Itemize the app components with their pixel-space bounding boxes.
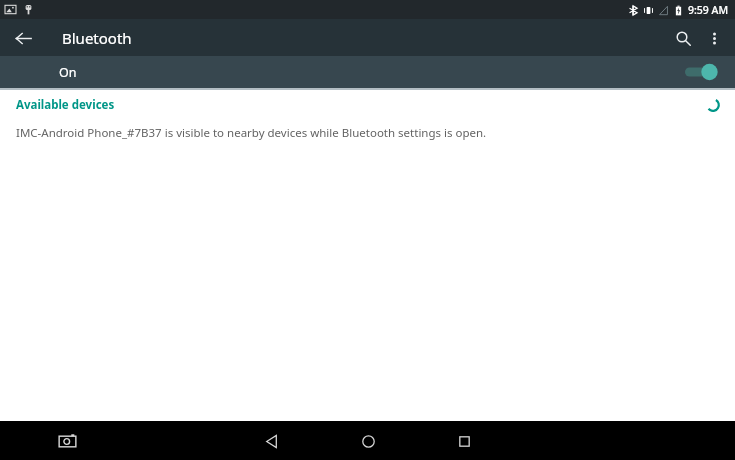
button[interactable]: Recent apps bbox=[446, 423, 482, 459]
staticText: Bluetooth bbox=[62, 28, 132, 48]
button[interactable]: More options bbox=[699, 23, 729, 53]
staticText: IMC-Android Phone_#7B37 is visible to ne… bbox=[16, 125, 487, 141]
button[interactable]: Home bbox=[350, 423, 386, 459]
button[interactable]: Navigate up bbox=[8, 23, 38, 53]
button[interactable]: On bbox=[0, 56, 735, 88]
button[interactable]: Search bbox=[667, 22, 699, 54]
staticText: On bbox=[59, 64, 77, 81]
button[interactable]: Back bbox=[253, 423, 289, 459]
button[interactable]: Screenshot bbox=[52, 426, 82, 456]
staticText: 9:59 AM bbox=[688, 3, 729, 17]
staticText: Available devices bbox=[16, 97, 115, 113]
other: Scanning for devices bbox=[705, 97, 721, 113]
